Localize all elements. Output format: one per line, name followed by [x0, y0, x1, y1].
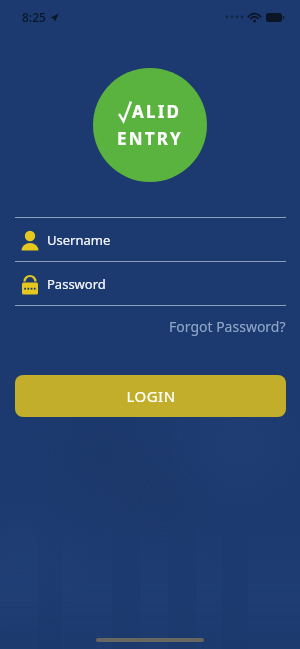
staticText: ALID — [132, 100, 182, 123]
staticText: LOGIN — [126, 386, 176, 406]
button[interactable]: Username — [15, 218, 286, 261]
staticText: 8:25 — [22, 9, 46, 25]
staticText: Forgot Password? — [169, 317, 286, 336]
staticText: Password — [47, 275, 106, 293]
staticText: Username — [47, 231, 111, 249]
staticText: ENTRY — [117, 127, 183, 150]
button[interactable]: LOGIN — [15, 375, 286, 417]
button[interactable]: Password — [15, 262, 286, 305]
button[interactable]: Forgot Password? — [169, 317, 286, 336]
